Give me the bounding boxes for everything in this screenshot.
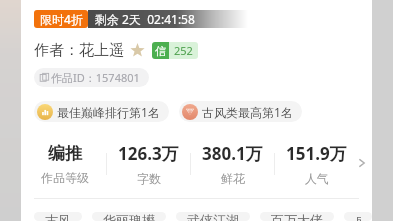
button[interactable]: Category top rank bbox=[179, 101, 302, 122]
other: Category top rank bbox=[182, 104, 198, 120]
staticText: 252 bbox=[174, 43, 193, 58]
other: Author badge bbox=[130, 43, 145, 58]
staticText: 编推 bbox=[48, 143, 82, 164]
staticText: 古风 bbox=[45, 212, 71, 221]
staticText: 人气 bbox=[305, 171, 329, 186]
staticText: 380.1万 bbox=[202, 142, 263, 165]
button[interactable]: 信 bbox=[152, 42, 198, 59]
staticText: 华丽瑰攃 bbox=[103, 212, 155, 221]
staticText: 剩余 2天 02:41:58 bbox=[95, 11, 195, 27]
staticText: 作品ID：1574801 bbox=[51, 70, 140, 85]
staticText: 126.3万 bbox=[118, 142, 179, 165]
staticText: 最佳巅峰排行第1名 bbox=[57, 104, 160, 120]
staticText: 鲜花 bbox=[221, 171, 245, 186]
button[interactable]: 古风 bbox=[34, 212, 82, 221]
button[interactable]: 百万大佬 bbox=[260, 212, 334, 221]
button[interactable]: 武侠江湖 bbox=[176, 212, 250, 221]
staticText: 古风类最高第1名 bbox=[202, 104, 293, 120]
button[interactable]: 成长向 bbox=[344, 212, 372, 221]
button[interactable]: 限时4折 bbox=[34, 10, 195, 28]
staticText: 字数 bbox=[137, 171, 161, 186]
staticText: 作品等级 bbox=[41, 170, 89, 185]
button[interactable]: 作品ID：1574801 bbox=[34, 68, 149, 87]
staticText: 百万大佬 bbox=[271, 212, 323, 221]
button[interactable]: 华丽瑰攃 bbox=[92, 212, 166, 221]
button[interactable]: Peak ranking bbox=[34, 101, 169, 122]
staticText: 信 bbox=[155, 44, 166, 58]
other: More details bbox=[357, 158, 367, 168]
staticText: 限时4折 bbox=[40, 11, 83, 27]
button[interactable]: 作者：花上遥 bbox=[34, 41, 198, 60]
staticText: 成长向 bbox=[355, 212, 361, 221]
staticText: 作者：花上遥 bbox=[34, 41, 124, 60]
staticText: 武侠江湖 bbox=[187, 212, 239, 221]
button[interactable]: 编推 bbox=[21, 142, 372, 188]
other: Peak ranking bbox=[37, 104, 53, 120]
staticText: 151.9万 bbox=[286, 142, 347, 165]
